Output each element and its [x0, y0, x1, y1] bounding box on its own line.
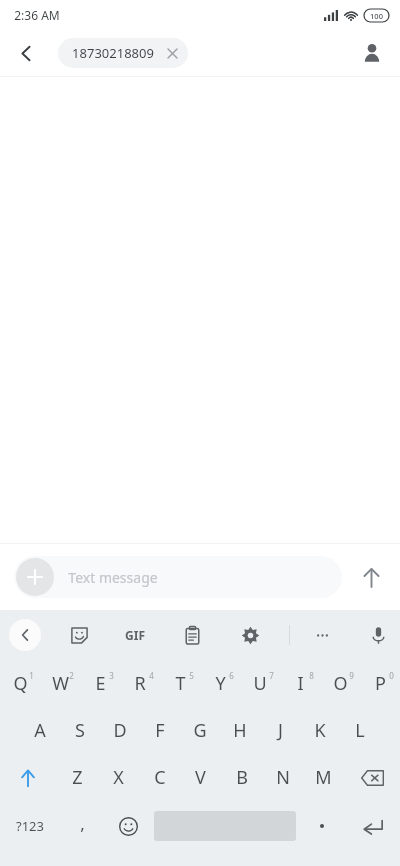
staticText: A: [34, 718, 46, 743]
button[interactable]: Comma: [60, 801, 104, 851]
staticText: U: [253, 671, 267, 696]
staticText: X: [113, 765, 124, 790]
button[interactable]: Clipboard: [172, 615, 212, 655]
button[interactable]: U: [240, 660, 280, 707]
button[interactable]: E: [80, 660, 120, 707]
button[interactable]: W: [40, 660, 80, 707]
staticText: E: [95, 671, 106, 696]
button[interactable]: N: [262, 754, 303, 801]
staticText: B: [236, 765, 248, 790]
button[interactable]: More options: [302, 615, 342, 655]
button[interactable]: L: [340, 707, 380, 754]
staticText: I: [297, 671, 304, 696]
button[interactable]: R: [120, 660, 160, 707]
button[interactable]: Y: [200, 660, 240, 707]
button[interactable]: C: [139, 754, 180, 801]
staticText: M: [315, 765, 332, 790]
button[interactable]: Emoji: [104, 801, 152, 851]
staticText: O: [333, 671, 348, 696]
button[interactable]: S: [60, 707, 100, 754]
button[interactable]: Period: [298, 801, 346, 851]
staticText: 5: [189, 670, 194, 681]
button[interactable]: Q: [0, 660, 40, 707]
staticText: R: [134, 671, 146, 696]
staticText: 1: [29, 670, 34, 681]
button[interactable]: G: [180, 707, 220, 754]
staticText: 100: [370, 11, 383, 21]
button[interactable]: Shift: [0, 754, 56, 801]
staticText: ,: [80, 812, 85, 835]
button[interactable]: ?123: [0, 801, 60, 851]
staticText: P: [375, 671, 386, 696]
button[interactable]: Add attachment: [16, 558, 54, 596]
button[interactable]: Settings: [230, 615, 270, 655]
button[interactable]: Stickers: [59, 615, 99, 655]
button[interactable]: J: [260, 707, 300, 754]
staticText: 6: [229, 670, 234, 681]
button[interactable]: Backspace: [344, 754, 400, 801]
staticText: Y: [215, 671, 226, 696]
staticText: H: [233, 718, 247, 743]
staticText: 4: [149, 670, 154, 681]
button[interactable]: Voice input: [358, 615, 398, 655]
staticText: T: [175, 671, 186, 696]
button[interactable]: 18730218809: [58, 38, 188, 68]
staticText: S: [75, 718, 85, 743]
button[interactable]: A: [20, 707, 60, 754]
staticText: N: [276, 765, 290, 790]
button[interactable]: GIF: [110, 615, 160, 655]
button[interactable]: I: [280, 660, 320, 707]
staticText: L: [355, 718, 365, 743]
staticText: 18730218809: [72, 44, 154, 62]
button[interactable]: Back: [6, 33, 46, 73]
button[interactable]: Send: [346, 552, 396, 602]
staticText: 2: [69, 670, 74, 681]
staticText: V: [195, 765, 206, 790]
staticText: 9: [349, 670, 354, 681]
staticText: C: [154, 765, 166, 790]
staticText: W: [52, 671, 69, 696]
button[interactable]: Add attachment: [14, 556, 342, 598]
staticText: 2:36 AM: [14, 7, 60, 23]
staticText: F: [155, 718, 165, 743]
button[interactable]: Enter: [346, 801, 400, 851]
staticText: Q: [13, 671, 28, 696]
staticText: 7: [269, 670, 274, 681]
staticText: 3: [109, 670, 114, 681]
staticText: K: [314, 718, 326, 743]
button[interactable]: T: [160, 660, 200, 707]
button[interactable]: B: [221, 754, 262, 801]
staticText: 8: [309, 670, 314, 681]
button[interactable]: Contact details: [352, 33, 392, 73]
staticText: Text message: [68, 568, 158, 587]
staticText: G: [193, 718, 207, 743]
button[interactable]: F: [140, 707, 180, 754]
button[interactable]: V: [180, 754, 221, 801]
staticText: GIF: [125, 627, 145, 643]
button[interactable]: H: [220, 707, 260, 754]
staticText: ?123: [16, 817, 44, 835]
staticText: J: [278, 718, 283, 743]
button[interactable]: X: [98, 754, 139, 801]
staticText: Z: [72, 765, 83, 790]
staticText: 0: [389, 670, 394, 681]
button[interactable]: Collapse toolbar: [9, 619, 41, 651]
button[interactable]: Remove recipient: [163, 44, 181, 62]
staticText: D: [113, 718, 127, 743]
button[interactable]: D: [100, 707, 140, 754]
button[interactable]: O: [320, 660, 360, 707]
button[interactable]: P: [360, 660, 400, 707]
button[interactable]: Z: [56, 754, 98, 801]
button[interactable]: K: [300, 707, 340, 754]
button[interactable]: M: [303, 754, 344, 801]
